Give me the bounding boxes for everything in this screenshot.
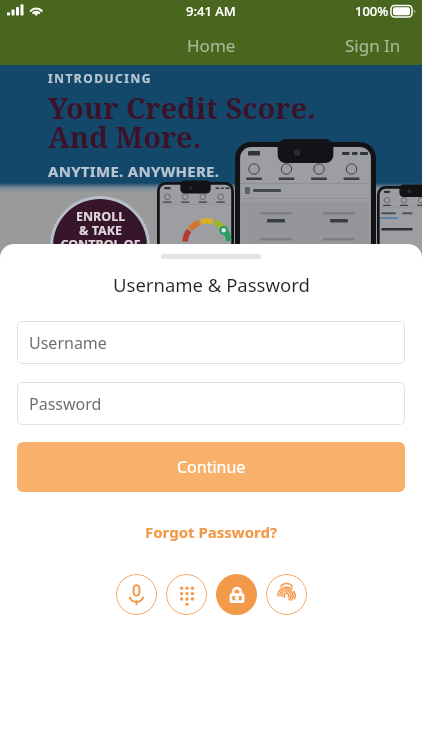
button[interactable]: Continue (17, 442, 405, 492)
staticText: Sign In (345, 34, 401, 57)
staticText: Username & Password (113, 272, 310, 297)
staticText: Password (29, 393, 102, 415)
staticText: ENROLL & TAKE CONTROL OF (60, 208, 141, 252)
staticText: 9:41 AM (186, 2, 236, 20)
button[interactable]: Voice login (116, 574, 157, 615)
button[interactable]: Home (173, 26, 250, 65)
button[interactable]: Password (17, 382, 405, 425)
staticText: Your Credit Score. And More. (48, 88, 316, 156)
button[interactable]: Username (17, 321, 405, 364)
staticText: Home (187, 34, 236, 57)
button[interactable]: Sign In (331, 26, 422, 65)
staticText: Username (29, 332, 107, 354)
staticText: Forgot Password? (145, 522, 278, 542)
staticText: 100% (355, 2, 389, 20)
button[interactable]: PIN login (166, 574, 207, 615)
button[interactable]: Password login (216, 574, 257, 615)
staticText: Continue (177, 456, 246, 478)
button[interactable]: Fingerprint login (266, 574, 307, 615)
staticText: ANYTIME. ANYWHERE. (48, 161, 220, 181)
staticText: INTRODUCING (48, 70, 152, 86)
button[interactable]: Forgot Password? (137, 518, 286, 546)
